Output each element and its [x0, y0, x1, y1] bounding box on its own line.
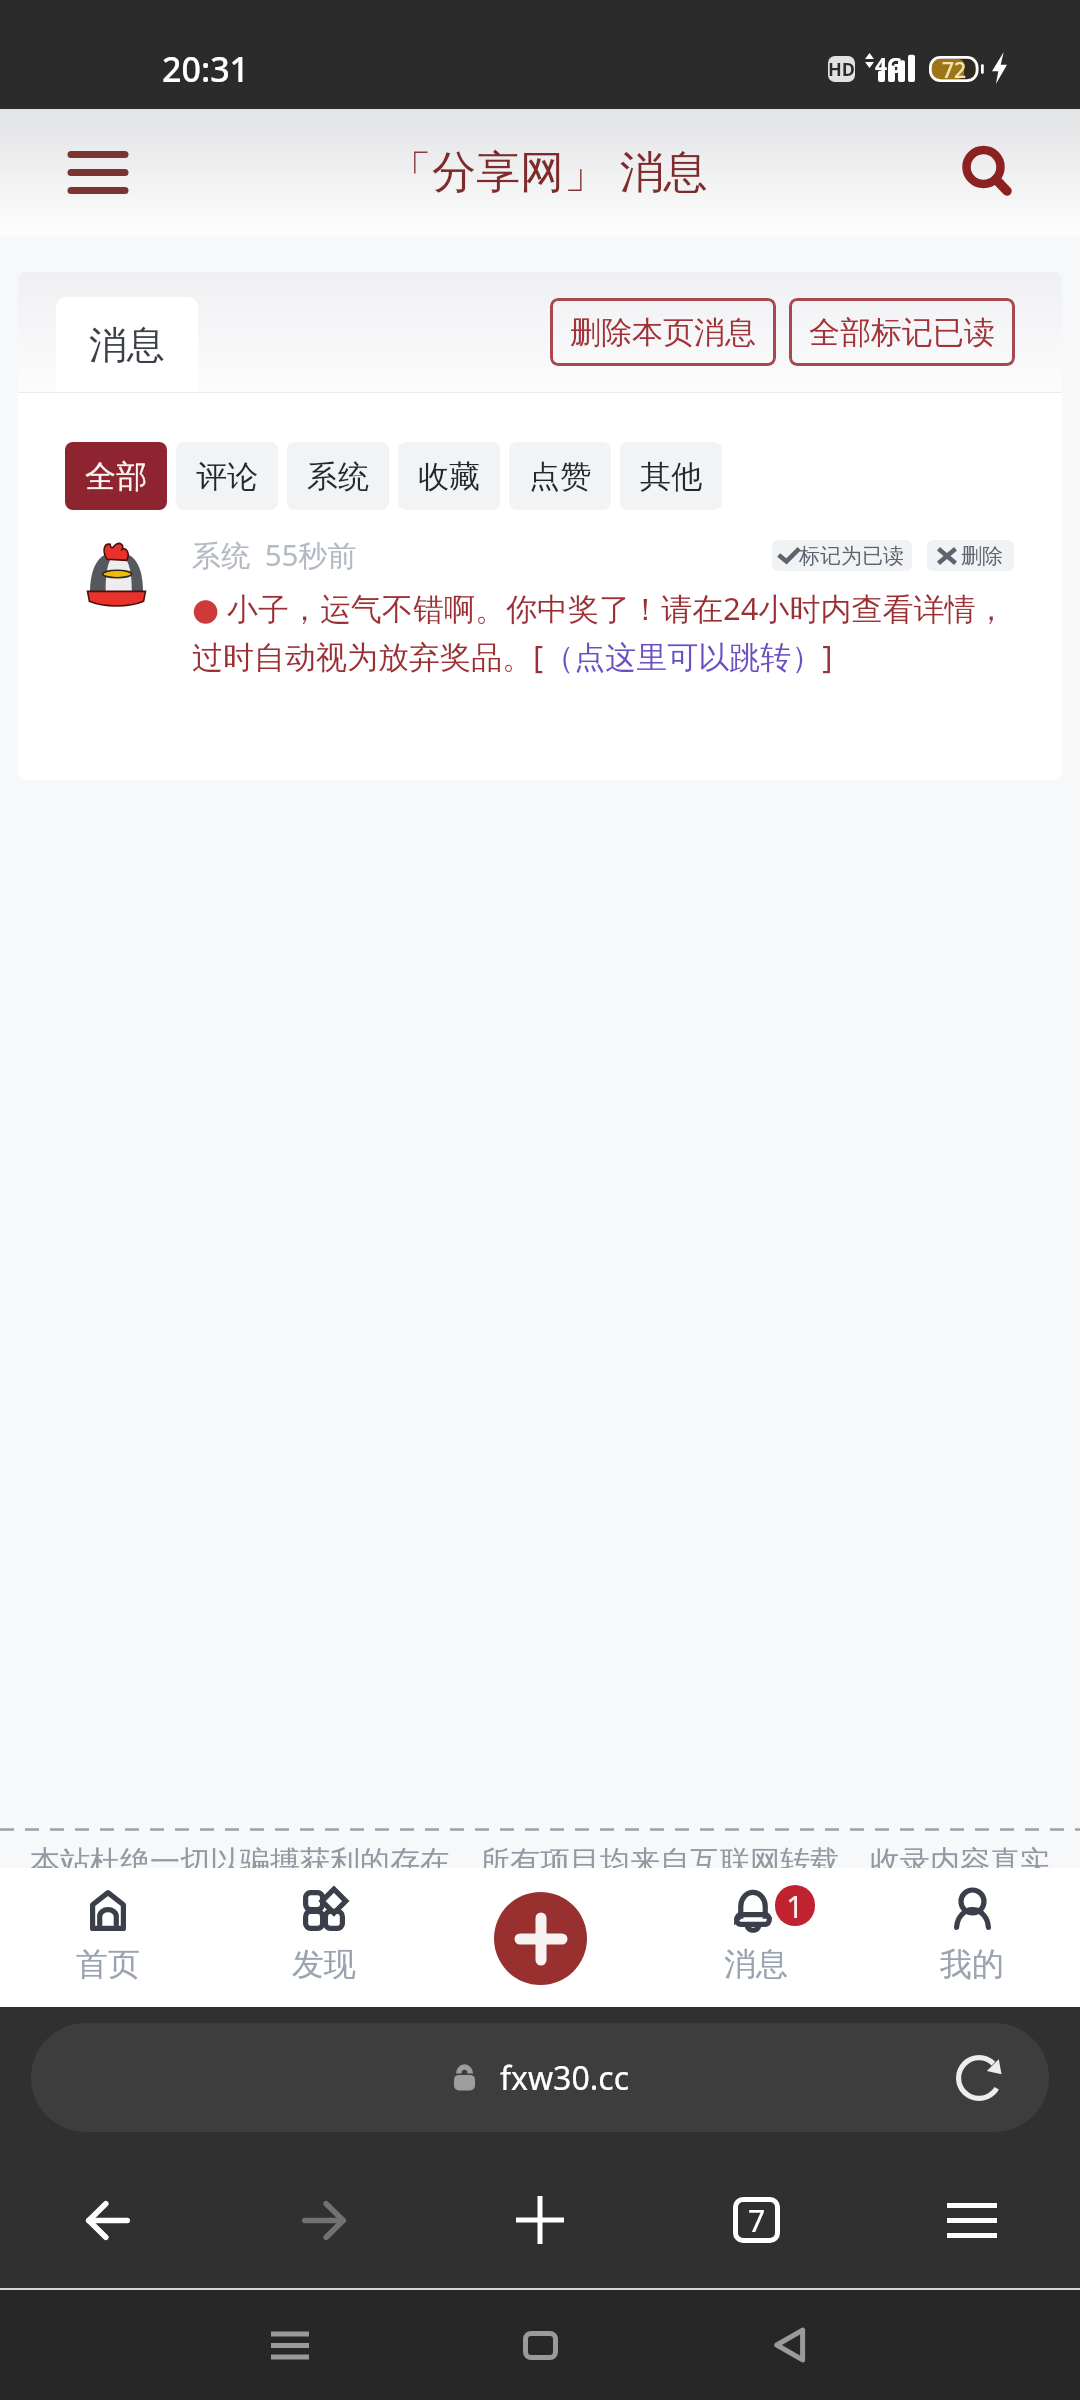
button[interactable]: 系统 — [287, 442, 389, 510]
button[interactable]: 全部 — [65, 442, 167, 510]
staticText: 本站杜绝一切以骗搏获利的存在，所有项目均来自互联网转载，收录内容真实 — [0, 1843, 1080, 1880]
button[interactable]: fxw30.cc — [31, 2023, 1049, 2132]
staticText: 7 — [748, 2200, 766, 2241]
staticText: ● 小子，运气不错啊。你中奖了！请在24小时内查看详情，过时自动视为放弃奖品。[… — [192, 587, 1014, 677]
button[interactable]: 全部标记已读 — [789, 298, 1015, 366]
button[interactable]: Home — [415, 2290, 665, 2400]
button[interactable]: Menu — [40, 123, 156, 221]
staticText: 72 — [942, 56, 967, 82]
staticText: 全部 — [85, 457, 147, 496]
staticText: 标记为已读 — [799, 543, 904, 569]
staticText: 4G — [875, 51, 903, 80]
staticText: HD — [828, 57, 855, 82]
button[interactable]: New tab — [432, 2152, 648, 2288]
staticText: 收藏 — [418, 457, 480, 496]
button[interactable]: Back — [0, 2152, 216, 2288]
button[interactable]: Reload — [951, 2050, 1007, 2106]
button[interactable]: 收藏 — [398, 442, 500, 510]
staticText: 删除 — [961, 543, 1003, 569]
button[interactable]: 删除 — [927, 540, 1014, 571]
staticText: 系统 — [307, 457, 369, 496]
staticText: 「分享网」 消息 — [388, 140, 708, 200]
button[interactable]: 首页 — [0, 1868, 216, 2007]
staticText: fxw30.cc — [500, 2056, 629, 2100]
staticText: 其他 — [640, 457, 702, 496]
staticText: 消息 — [724, 1944, 788, 1984]
button[interactable]: 我的 — [864, 1868, 1080, 2007]
staticText: 1 — [786, 1885, 804, 1926]
button[interactable]: 点赞 — [509, 442, 611, 510]
button[interactable]: Recents — [165, 2290, 415, 2400]
button[interactable]: Back — [665, 2290, 915, 2400]
staticText: 发现 — [292, 1944, 356, 1984]
button[interactable]: Search — [939, 123, 1037, 221]
button[interactable]: 1 — [648, 1868, 864, 2007]
button[interactable]: Menu — [864, 2152, 1080, 2288]
button[interactable]: 删除本页消息 — [550, 298, 776, 366]
button[interactable]: Forward — [216, 2152, 432, 2288]
button[interactable]: 其他 — [620, 442, 722, 510]
staticText: 20:31 — [162, 46, 250, 92]
button[interactable]: 发现 — [216, 1868, 432, 2007]
staticText: 消息 — [89, 321, 165, 369]
staticText: 系统 55秒前 — [192, 535, 357, 575]
staticText: 点赞 — [529, 457, 591, 496]
staticText: 删除本页消息 — [570, 313, 756, 352]
staticText: 首页 — [76, 1944, 140, 1984]
button[interactable]: 消息 — [56, 297, 198, 392]
staticText: 我的 — [940, 1944, 1004, 1984]
staticText: 评论 — [196, 457, 258, 496]
button[interactable]: 标记为已读 — [772, 540, 912, 571]
button[interactable]: 评论 — [176, 442, 278, 510]
button[interactable]: Tabs — [648, 2152, 864, 2288]
staticText: 全部标记已读 — [809, 313, 995, 352]
button[interactable]: Add — [494, 1892, 587, 1985]
